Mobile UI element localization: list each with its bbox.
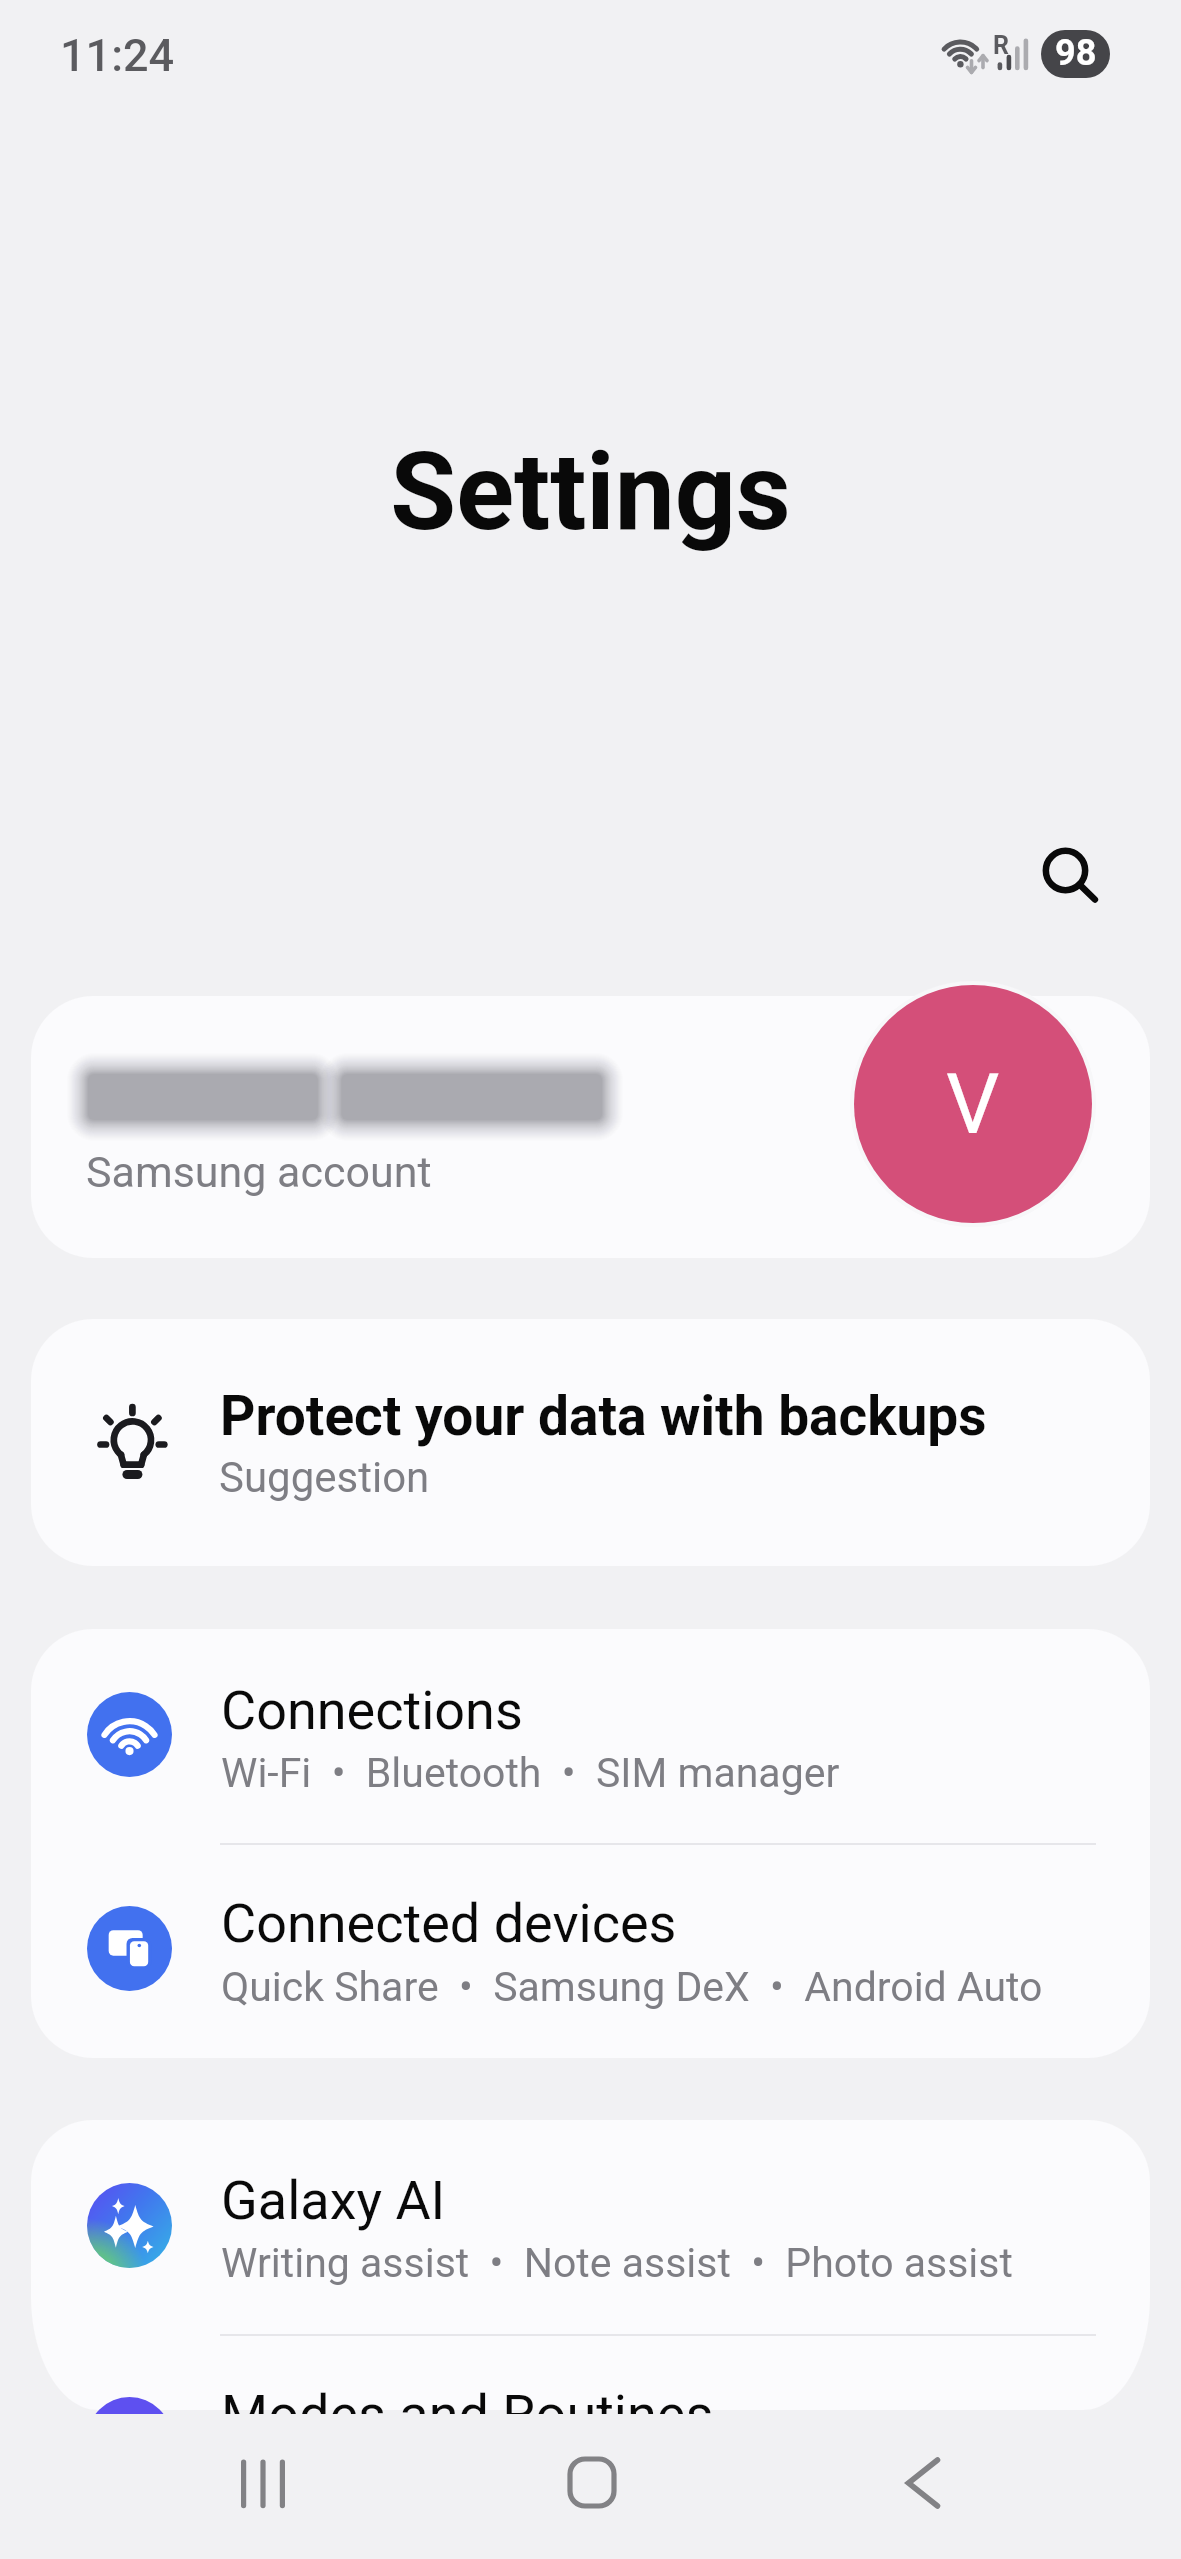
button[interactable]	[31, 996, 1150, 1258]
staticText: Wi-Fi • Bluetooth • SIM manager	[221, 1749, 840, 1797]
button[interactable]: Search	[1005, 810, 1126, 931]
button[interactable]	[31, 1843, 1150, 2057]
staticText: Connected devices	[221, 1892, 677, 1955]
staticText: Suggestion	[219, 1453, 430, 1502]
button[interactable]	[31, 1629, 1150, 1843]
staticText: Samsung account	[86, 1147, 432, 1197]
staticText: Galaxy AI	[221, 2169, 446, 2232]
staticText: Connections	[221, 1679, 523, 1742]
staticText: Protect your data with backups	[220, 1384, 987, 1448]
button[interactable]	[31, 2334, 1150, 2410]
staticText: Writing assist • Note assist • Photo ass…	[221, 2239, 1013, 2287]
button[interactable]	[31, 2120, 1150, 2334]
button[interactable]: Protect your data with backups	[31, 1319, 1150, 1566]
staticText: R	[993, 31, 1010, 60]
staticText: Settings	[0, 430, 1181, 555]
staticText: 11:24	[60, 29, 175, 82]
button[interactable]: Recent apps	[183, 2410, 343, 2559]
button[interactable]: Home	[512, 2410, 672, 2559]
staticText: 98	[1055, 32, 1097, 74]
staticText: V	[946, 1055, 1000, 1153]
staticText: Modes and Routines	[221, 2383, 714, 2414]
button[interactable]: Back	[843, 2410, 1003, 2559]
staticText: Quick Share • Samsung DeX • Android Auto	[221, 1963, 1043, 2011]
button[interactable]: Profile	[850, 981, 1096, 1227]
